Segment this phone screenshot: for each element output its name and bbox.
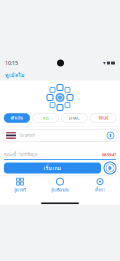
- button[interactable]: สูตรฟรี: [0, 177, 40, 194]
- staticText: ▾: [103, 60, 106, 66]
- staticText: ขณะนี้ : ไม่มีข้อมูล: [4, 151, 37, 158]
- staticText: ตั้งค่า: [95, 187, 105, 193]
- button[interactable]: DTAC: [61, 113, 87, 122]
- staticText: TRUE: [98, 115, 108, 121]
- staticText: สุ่มเลือกเลข: [51, 187, 69, 193]
- button[interactable]: AIS: [33, 113, 59, 122]
- staticText: ทูเมิลโม: [5, 71, 25, 79]
- staticText: โทรศัพท์: [19, 132, 35, 139]
- staticText: ฿: [108, 165, 112, 171]
- button[interactable]: เติมเงิน: [4, 113, 30, 122]
- button[interactable]: Credits: [104, 162, 116, 174]
- staticText: เริ่มเกม: [43, 164, 61, 172]
- staticText: เติมเงิน: [10, 115, 23, 121]
- staticText: 10:15: [5, 59, 18, 67]
- staticText: DTAC: [69, 115, 80, 121]
- staticText: สูตรฟรี: [14, 187, 26, 193]
- button[interactable]: ตั้งค่า: [80, 177, 120, 194]
- staticText: AIS: [43, 115, 49, 121]
- button[interactable]: เริ่มเกม: [4, 162, 101, 173]
- button[interactable]: โทรศัพท์: [3, 129, 117, 141]
- button[interactable]: TRUE: [90, 113, 116, 122]
- button[interactable]: สุ่มเลือกเลข: [40, 177, 80, 194]
- staticText: 08:59:47: [102, 152, 116, 157]
